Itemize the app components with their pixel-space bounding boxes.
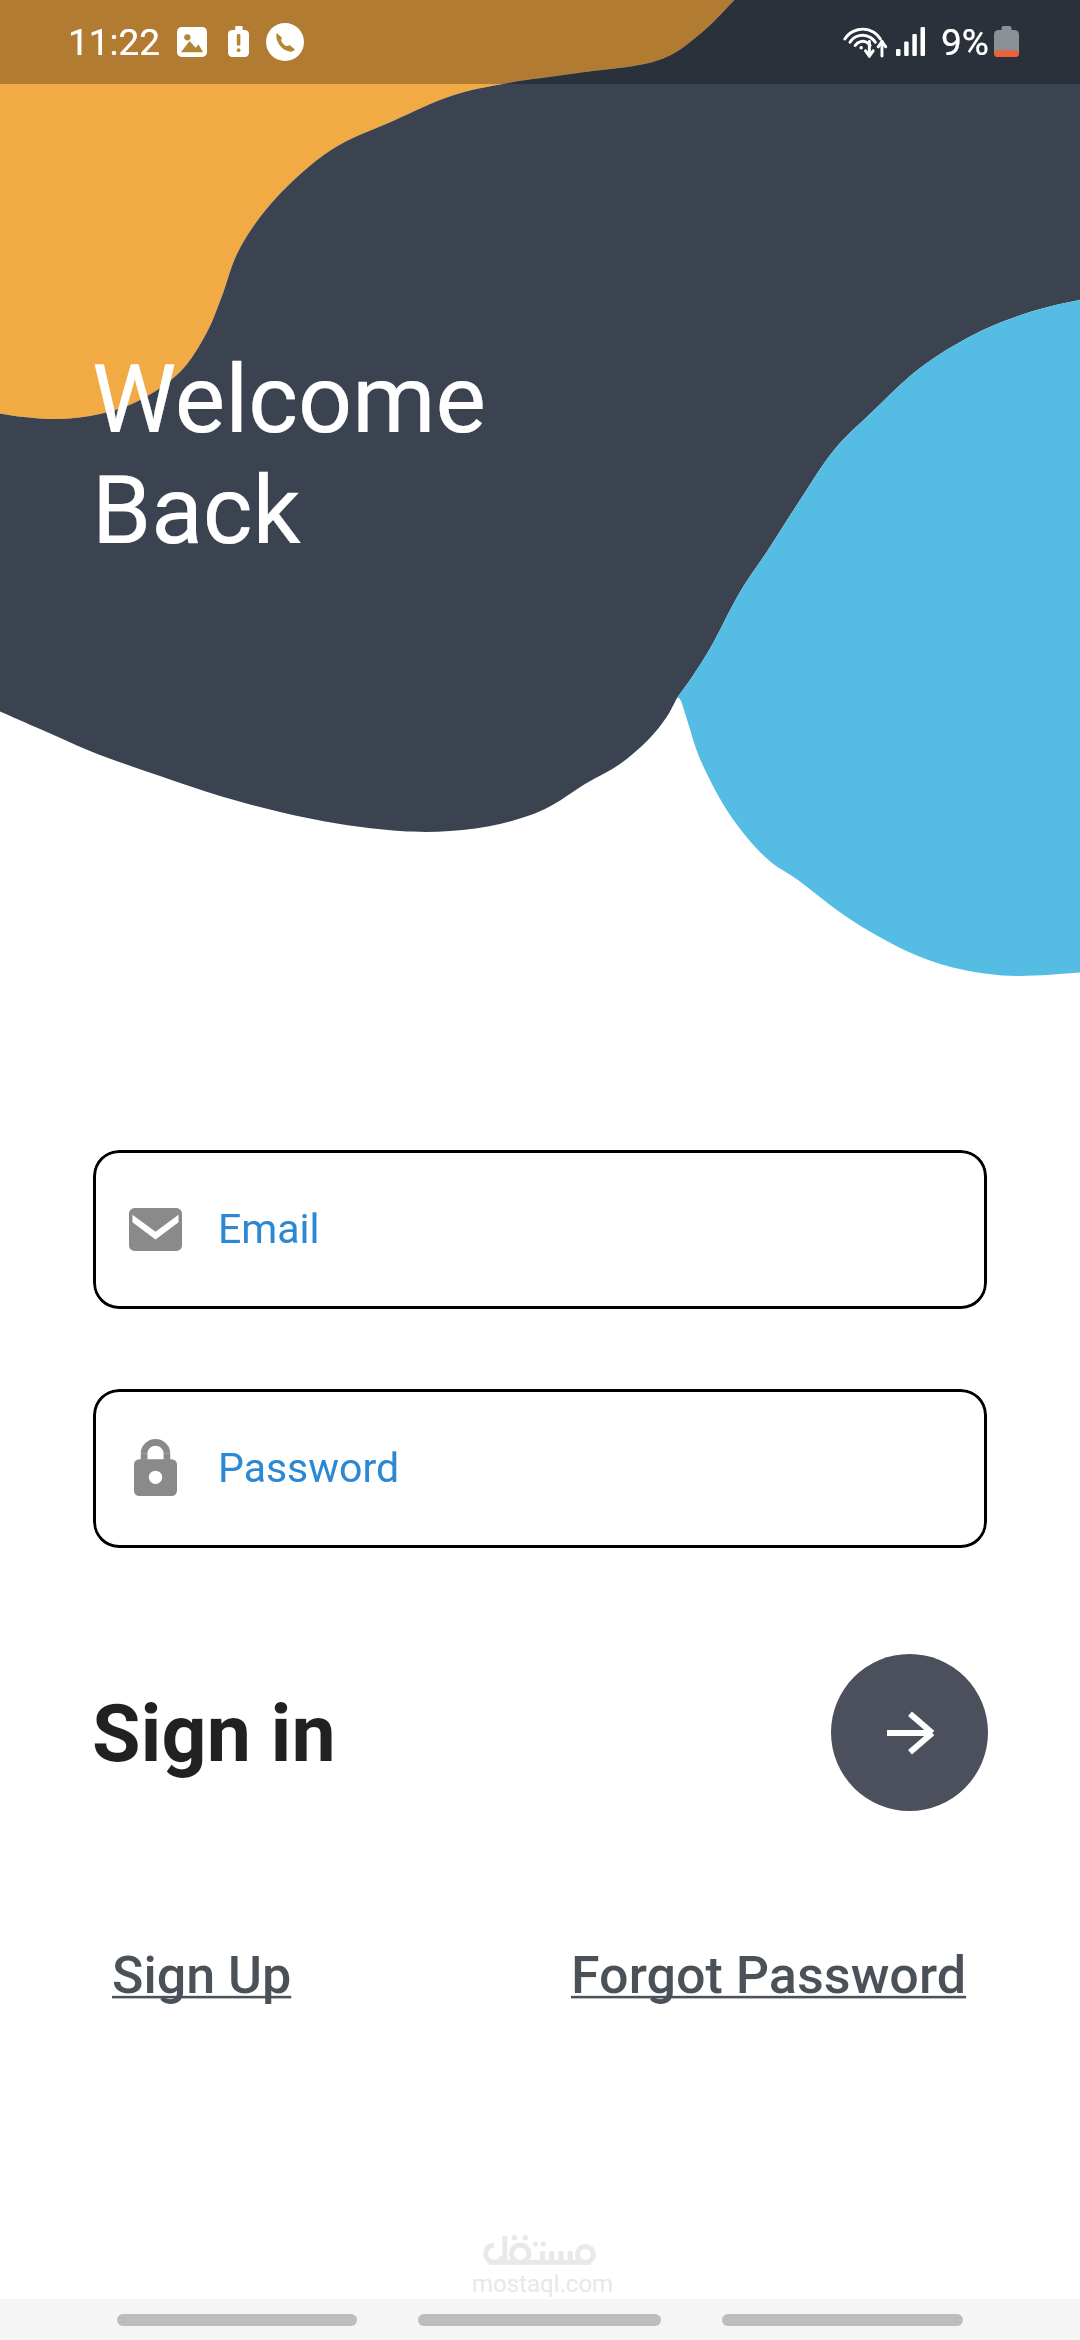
button[interactable]: Email bbox=[93, 1150, 987, 1309]
button[interactable]: Sign Up bbox=[112, 1945, 292, 2006]
staticText: Welcome bbox=[92, 344, 486, 455]
button[interactable]: Back bbox=[722, 2314, 963, 2326]
staticText: Password bbox=[218, 1444, 400, 1492]
staticText: 9% bbox=[941, 21, 989, 64]
button[interactable]: Home bbox=[418, 2314, 661, 2326]
staticText: Email bbox=[218, 1205, 320, 1253]
button[interactable]: Recent apps bbox=[117, 2314, 357, 2326]
staticText: 11:22 bbox=[68, 21, 161, 64]
button[interactable]: Sign in bbox=[92, 1688, 336, 1781]
staticText: mostaql.com bbox=[472, 2270, 614, 2298]
button[interactable]: Password bbox=[93, 1389, 987, 1548]
button[interactable]: Forgot Password bbox=[571, 1945, 967, 2006]
button[interactable]: Sign in bbox=[831, 1654, 988, 1811]
staticText: Back bbox=[92, 455, 301, 566]
